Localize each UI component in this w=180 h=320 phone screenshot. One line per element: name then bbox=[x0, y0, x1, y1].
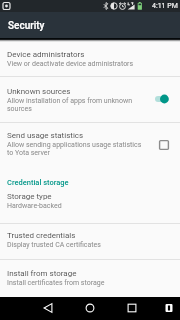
button[interactable]: Unknown sources bbox=[0, 76, 180, 122]
staticText: Install from storage bbox=[7, 269, 77, 278]
staticText: Install certificates from storage bbox=[7, 279, 105, 287]
staticText: Hardware-backed bbox=[7, 202, 62, 210]
staticText: Storage type bbox=[7, 192, 52, 201]
button[interactable]: Home bbox=[80, 298, 100, 318]
button[interactable]: Menu bbox=[159, 298, 179, 318]
button[interactable]: Send usage statistics checkbox bbox=[157, 138, 171, 152]
staticText: Send usage statistics bbox=[7, 131, 84, 140]
button[interactable]: Install from storage bbox=[0, 259, 180, 296]
staticText: Allow installation of apps from unknown … bbox=[7, 97, 133, 112]
button[interactable]: Send usage statistics bbox=[0, 122, 180, 168]
staticText: Credential storage bbox=[7, 178, 69, 187]
staticText: 4:11 PM bbox=[152, 2, 178, 10]
staticText: View or deactivate device administrators bbox=[7, 60, 134, 68]
button[interactable]: Unknown sources toggle bbox=[155, 92, 171, 106]
button[interactable]: Storage type bbox=[0, 186, 180, 223]
staticText: Security bbox=[8, 20, 45, 32]
button[interactable]: Trusted credentials bbox=[0, 223, 180, 259]
staticText: Display trusted CA certificates bbox=[7, 241, 101, 249]
staticText: Unknown sources bbox=[7, 87, 71, 96]
staticText: Trusted credentials bbox=[7, 231, 76, 240]
button[interactable]: Device administrators bbox=[0, 39, 180, 76]
button[interactable]: Back bbox=[38, 298, 58, 318]
staticText: Device administrators bbox=[7, 50, 85, 59]
staticText: Allow sending applications usage statist… bbox=[7, 141, 142, 156]
button[interactable]: Recent apps bbox=[122, 298, 142, 318]
